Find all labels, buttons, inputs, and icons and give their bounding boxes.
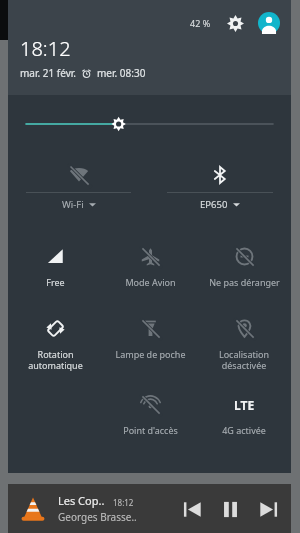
button[interactable]: Point d'accès	[103, 383, 197, 451]
staticText: 4G activée	[222, 424, 266, 436]
staticText: Point d'accès	[123, 424, 178, 436]
button[interactable]: Ne pas déranger	[197, 235, 291, 307]
staticText: mer. 08:30	[97, 66, 146, 80]
button[interactable]: Rotation automatique	[8, 307, 103, 383]
staticText: 18:12	[20, 35, 71, 62]
button[interactable]: Wi-Fi	[8, 193, 149, 215]
button[interactable]: EP650	[149, 193, 291, 215]
button[interactable]: Next track	[253, 494, 283, 524]
staticText: 18:12	[113, 497, 134, 508]
staticText: Localisation désactivée	[199, 348, 289, 371]
button[interactable]: Free	[8, 235, 103, 307]
staticText: EP650	[200, 198, 228, 211]
button[interactable]: Mode Avion	[103, 235, 197, 307]
staticText: Lampe de poche	[115, 348, 186, 360]
button[interactable]: Bluetooth	[149, 157, 291, 192]
button[interactable]: Pause	[215, 494, 245, 524]
staticText: Rotation automatique	[10, 348, 101, 371]
staticText: Ne pas déranger	[209, 276, 280, 288]
button[interactable]: Localisation désactivée	[197, 307, 291, 383]
staticText: LTE	[234, 397, 255, 413]
staticText: Les Cop..	[58, 493, 105, 508]
staticText: 42 %	[190, 17, 211, 29]
staticText: Wi-Fi	[62, 198, 84, 211]
staticText: Mode Avion	[125, 276, 176, 288]
button[interactable]: LTE	[197, 383, 291, 451]
button[interactable]: Brightness	[8, 111, 291, 137]
button[interactable]: Lampe de poche	[103, 307, 197, 383]
staticText: Georges Brasse..	[58, 510, 137, 524]
button[interactable]: User profile	[257, 11, 281, 35]
staticText: mar. 21 févr.	[20, 66, 76, 80]
button[interactable]: Previous track	[177, 494, 207, 524]
staticText: Free	[46, 276, 65, 288]
button[interactable]: Settings	[224, 12, 246, 34]
button[interactable]: Wi-Fi	[8, 157, 149, 192]
